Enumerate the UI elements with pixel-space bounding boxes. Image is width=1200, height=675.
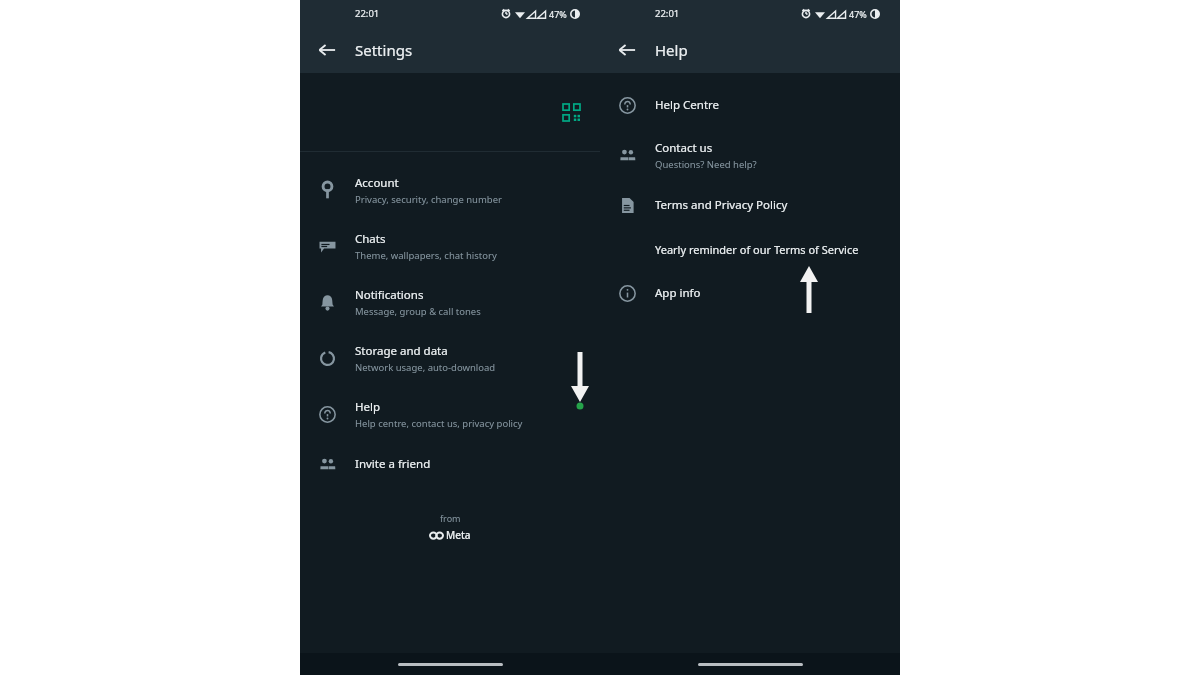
- staticText: Help centre, contact us, privacy policy: [355, 417, 523, 430]
- button[interactable]: Back: [608, 31, 646, 69]
- button[interactable]: Invite a friend: [300, 442, 600, 486]
- staticText: Invite a friend: [355, 456, 431, 472]
- button[interactable]: Terms and Privacy Policy: [600, 183, 900, 227]
- staticText: Help: [355, 399, 381, 415]
- staticText: Account: [355, 175, 399, 191]
- button[interactable]: Help Centre: [600, 83, 900, 127]
- button[interactable]: Notifications: [300, 274, 600, 330]
- button[interactable]: Back: [308, 31, 346, 69]
- staticText: Questions? Need help?: [655, 158, 757, 171]
- staticText: Network usage, auto-download: [355, 361, 496, 374]
- staticText: Contact us: [655, 140, 713, 156]
- button[interactable]: App info: [600, 271, 900, 315]
- button[interactable]: Storage and data: [300, 330, 600, 386]
- staticText: Storage and data: [355, 343, 448, 359]
- button[interactable]: Help: [300, 386, 600, 442]
- staticText: Privacy, security, change number: [355, 193, 502, 206]
- staticText: Message, group & call tones: [355, 305, 481, 318]
- button[interactable]: Yearly reminder of our Terms of Service: [655, 242, 859, 257]
- staticText: 22:01: [655, 7, 680, 20]
- button[interactable]: QR code: [556, 97, 586, 127]
- staticText: Terms and Privacy Policy: [655, 197, 788, 213]
- staticText: Help: [655, 40, 688, 60]
- staticText: Theme, wallpapers, chat history: [355, 249, 497, 262]
- staticText: 47%: [849, 8, 867, 20]
- staticText: Settings: [355, 40, 413, 60]
- staticText: Notifications: [355, 287, 424, 303]
- staticText: from: [440, 512, 461, 524]
- staticText: 47%: [549, 8, 567, 20]
- staticText: 22:01: [355, 7, 380, 20]
- button[interactable]: Chats: [300, 218, 600, 274]
- staticText: Help Centre: [655, 97, 720, 113]
- staticText: Meta: [446, 528, 471, 542]
- button[interactable]: Account: [300, 162, 600, 218]
- staticText: App info: [655, 285, 701, 301]
- staticText: Chats: [355, 231, 386, 247]
- button[interactable]: Contact us: [600, 127, 900, 183]
